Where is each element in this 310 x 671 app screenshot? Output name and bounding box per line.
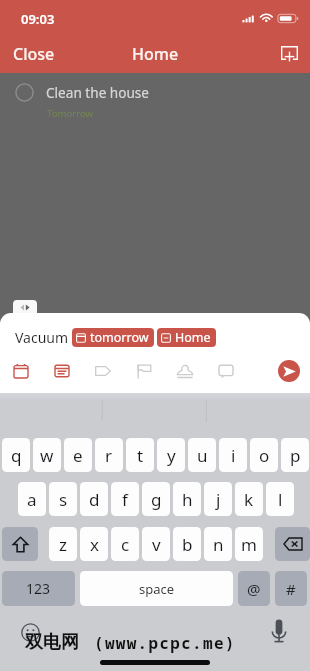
button[interactable]: v: [142, 527, 170, 561]
staticText: k: [244, 488, 254, 511]
button[interactable]: Clean the house: [0, 73, 310, 130]
button[interactable]: u: [188, 438, 216, 472]
button[interactable]: g: [142, 482, 170, 516]
staticText: Home: [132, 43, 179, 65]
staticText: y: [167, 444, 176, 467]
button[interactable]: Assignee: [168, 354, 202, 388]
staticText: @: [247, 579, 261, 599]
button[interactable]: Send: [278, 360, 300, 382]
button[interactable]: f: [111, 482, 139, 516]
staticText: m: [241, 533, 257, 556]
staticText: Tomorrow: [47, 107, 94, 120]
staticText: n: [213, 533, 224, 556]
button[interactable]: Add list: [272, 40, 306, 70]
staticText: q: [11, 444, 22, 467]
staticText: g: [151, 488, 162, 511]
staticText: p: [290, 444, 301, 467]
staticText: x: [90, 533, 99, 556]
button[interactable]: x: [80, 527, 108, 561]
staticText: d: [89, 488, 100, 511]
button[interactable]: Voice input: [266, 618, 292, 644]
button[interactable]: Label: [86, 354, 120, 388]
staticText: i: [231, 444, 236, 467]
staticText: v: [152, 533, 161, 556]
button[interactable]: s: [49, 482, 77, 516]
staticText: space: [139, 580, 175, 598]
button[interactable]: r: [95, 438, 123, 472]
staticText: s: [59, 488, 68, 511]
button[interactable]: l: [266, 482, 294, 516]
button[interactable]: n: [204, 527, 232, 561]
button[interactable]: w: [33, 438, 61, 472]
staticText: a: [27, 488, 37, 511]
button[interactable]: b: [173, 527, 201, 561]
button[interactable]: Due date: [4, 354, 38, 388]
button[interactable]: Backspace: [275, 527, 310, 561]
staticText: 双电网: [25, 631, 79, 654]
staticText: w: [40, 444, 54, 467]
staticText: 123: [26, 579, 51, 598]
staticText: (www.pcpc.me): [94, 632, 236, 654]
staticText: 09:03: [21, 10, 55, 28]
button[interactable]: c: [111, 527, 139, 561]
staticText: r: [105, 444, 113, 467]
staticText: h: [182, 488, 193, 511]
button[interactable]: space: [80, 571, 233, 606]
staticText: f: [122, 488, 128, 511]
button[interactable]: #: [275, 571, 307, 606]
button[interactable]: z: [49, 527, 77, 561]
staticText: c: [121, 533, 130, 556]
staticText: b: [182, 533, 193, 556]
button[interactable]: h: [173, 482, 201, 516]
staticText: Close: [13, 43, 55, 65]
button[interactable]: d: [80, 482, 108, 516]
button[interactable]: k: [235, 482, 263, 516]
staticText: #: [286, 579, 296, 599]
button[interactable]: a: [18, 482, 46, 516]
staticText: o: [259, 444, 270, 467]
button[interactable]: j: [204, 482, 232, 516]
button[interactable]: tomorrow: [72, 328, 154, 347]
staticText: u: [197, 444, 208, 467]
staticText: l: [278, 488, 283, 511]
staticText: z: [59, 533, 67, 556]
button[interactable]: o: [250, 438, 278, 472]
button[interactable]: 123: [2, 571, 75, 606]
button[interactable]: Emoji: [18, 620, 42, 644]
button[interactable]: m: [235, 527, 263, 561]
staticText: j: [216, 488, 221, 511]
button[interactable]: y: [157, 438, 185, 472]
staticText: tomorrow: [90, 329, 149, 346]
staticText: Vacuum: [15, 328, 69, 347]
button[interactable]: Close: [0, 39, 68, 69]
staticText: t: [137, 444, 144, 467]
button[interactable]: i: [219, 438, 247, 472]
staticText: e: [73, 444, 83, 467]
button[interactable]: Comment: [209, 354, 243, 388]
staticText: Clean the house: [46, 83, 150, 102]
button[interactable]: Description: [45, 354, 79, 388]
button[interactable]: Priority: [127, 354, 161, 388]
button[interactable]: @: [238, 571, 270, 606]
button[interactable]: q: [2, 438, 30, 472]
button[interactable]: Indent: [13, 300, 37, 319]
button[interactable]: p: [281, 438, 309, 472]
button[interactable]: Shift: [2, 527, 38, 561]
staticText: Home: [175, 329, 211, 346]
button[interactable]: e: [64, 438, 92, 472]
button[interactable]: t: [126, 438, 154, 472]
button[interactable]: Home: [157, 328, 216, 347]
